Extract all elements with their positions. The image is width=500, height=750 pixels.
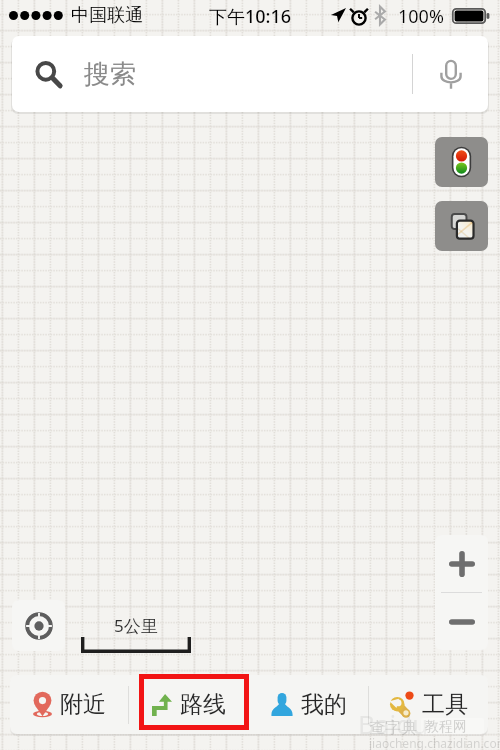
button[interactable]: 附近 — [10, 675, 128, 734]
staticText: 我的 — [301, 690, 347, 719]
staticText: 查字典 — [369, 718, 417, 738]
button[interactable]: Zoom out — [435, 593, 488, 650]
button[interactable]: 搜索 — [12, 36, 488, 112]
staticText: 搜索 — [84, 58, 136, 91]
staticText: 100% — [398, 4, 444, 29]
staticText: 附近 — [60, 690, 106, 719]
button[interactable]: My location — [12, 600, 65, 651]
button[interactable]: Zoom in — [435, 535, 488, 592]
button[interactable]: 我的 — [249, 675, 368, 734]
staticText: 路线 — [180, 690, 226, 719]
staticText: Baidu — [358, 706, 429, 741]
staticText: 下午10:16 — [209, 4, 292, 29]
staticText: 工具 — [422, 690, 468, 719]
button[interactable]: Traffic conditions — [435, 137, 488, 187]
staticText: 教程网 — [425, 718, 467, 735]
staticText: jiaocheng.chazidian.com — [369, 735, 500, 750]
button[interactable]: Map layers — [435, 201, 488, 251]
staticText: 中国联通 — [71, 4, 143, 27]
staticText: 5公里 — [114, 614, 158, 637]
button[interactable]: 工具 — [369, 675, 488, 734]
button[interactable]: 路线 — [129, 675, 248, 734]
